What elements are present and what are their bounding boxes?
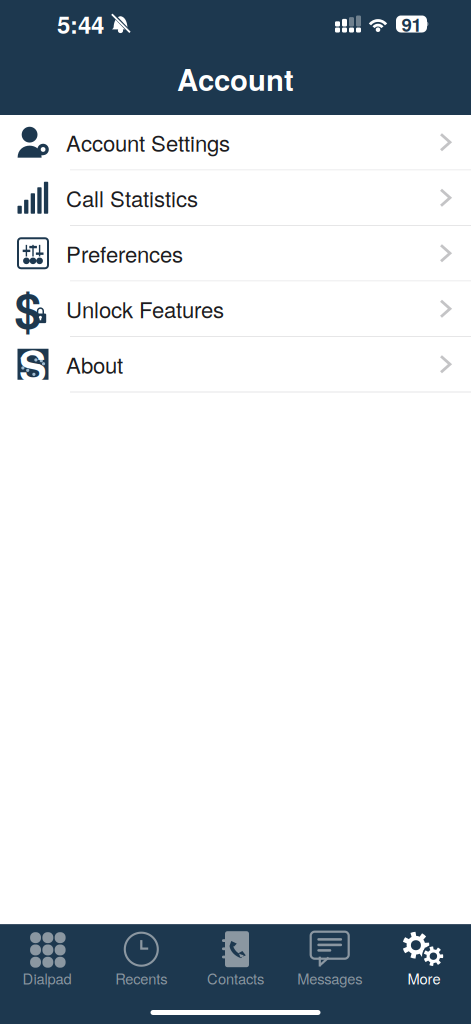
button[interactable]: Account Settings <box>0 115 471 170</box>
staticText: Account Settings <box>66 126 230 158</box>
button[interactable]: S <box>0 337 471 392</box>
button[interactable]: Recents <box>94 925 188 990</box>
staticText: Unlock Features <box>66 293 224 325</box>
button[interactable]: Call Statistics <box>0 170 471 226</box>
button[interactable]: Contacts <box>188 925 283 990</box>
staticText: Preferences <box>66 237 183 269</box>
staticText: Account <box>177 58 294 100</box>
button[interactable]: More <box>377 925 471 990</box>
staticText: More <box>407 968 440 989</box>
button[interactable]: Messages <box>283 925 377 990</box>
staticText: 5:44 <box>57 7 104 41</box>
staticText: $ <box>14 274 41 343</box>
staticText: Call Statistics <box>66 182 198 214</box>
staticText: Messages <box>297 968 362 989</box>
staticText: About <box>66 348 123 380</box>
staticText: Recents <box>115 968 167 989</box>
button[interactable]: $ <box>0 281 471 337</box>
button[interactable]: Dialpad <box>0 925 94 990</box>
button[interactable]: Preferences <box>0 226 471 281</box>
staticText: Dialpad <box>23 968 72 989</box>
staticText: 91 <box>401 11 421 37</box>
staticText: Contacts <box>207 968 264 989</box>
staticText: S <box>19 335 47 394</box>
